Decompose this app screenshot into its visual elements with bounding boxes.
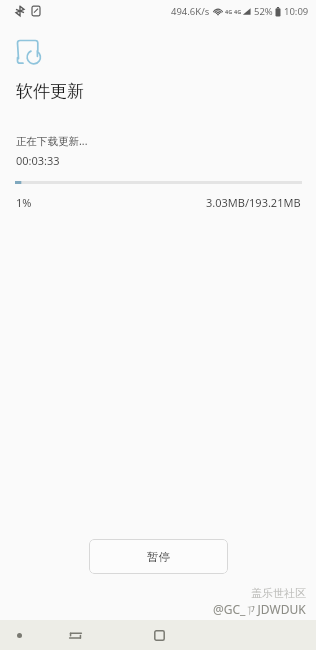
staticText: 494.6K/s <box>171 5 210 18</box>
staticText: 10:09 <box>284 5 309 18</box>
staticText: 正在下载更新... <box>16 134 88 148</box>
button[interactable]: Recents <box>62 622 88 648</box>
button[interactable]: Home <box>146 622 172 648</box>
staticText: 盖乐世社区 <box>251 586 306 600</box>
staticText: 3.03MB/193.21MB <box>206 195 301 210</box>
staticText: 软件更新 <box>16 81 84 102</box>
staticText: 00:03:33 <box>16 153 60 168</box>
staticText: @GC_ㄗJDWDUK <box>213 601 306 617</box>
staticText: 4G <box>225 8 233 15</box>
staticText: 52% <box>254 5 273 18</box>
staticText: 暂停 <box>147 550 170 564</box>
button[interactable]: Keyboard toggle <box>8 624 30 646</box>
staticText: 4G <box>234 8 242 15</box>
button[interactable]: 暂停 <box>89 539 228 574</box>
staticText: 1% <box>16 195 32 210</box>
